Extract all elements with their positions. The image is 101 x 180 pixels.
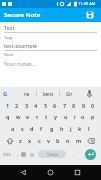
staticText: z <box>19 137 22 144</box>
button[interactable]: s <box>21 125 24 132</box>
staticText: test.example <box>4 42 38 49</box>
button[interactable]: 5 <box>44 102 48 109</box>
button[interactable]: G <box>3 90 11 98</box>
button[interactable]: Secure Note <box>0 8 101 22</box>
staticText: g <box>50 125 54 132</box>
staticText: u <box>64 113 68 120</box>
button[interactable]: o <box>81 113 85 120</box>
button[interactable]: Gir <box>63 87 75 101</box>
button[interactable] <box>74 169 81 176</box>
button[interactable]: bens <box>41 87 55 101</box>
button[interactable]: 7 <box>63 102 67 109</box>
button[interactable]: d <box>30 125 34 132</box>
button[interactable] <box>87 137 95 145</box>
button[interactable] <box>20 151 27 158</box>
staticText: 8 <box>72 102 76 109</box>
button[interactable]: . <box>71 151 77 159</box>
button[interactable]: c <box>38 137 41 144</box>
button[interactable]: m <box>76 137 82 144</box>
staticText: n <box>66 137 70 144</box>
staticText: Türkçe <box>47 152 58 157</box>
button[interactable]: z <box>19 137 22 144</box>
button[interactable]: p <box>91 113 95 120</box>
button[interactable]: ?123 <box>2 150 12 158</box>
button[interactable]: u <box>64 113 68 120</box>
button[interactable] <box>86 11 94 19</box>
button[interactable]: j <box>70 125 72 132</box>
staticText: l <box>88 125 90 132</box>
button[interactable]: x <box>28 137 32 144</box>
staticText: , <box>17 151 19 157</box>
button[interactable] <box>85 149 96 160</box>
staticText: q <box>6 113 10 120</box>
staticText: bens <box>43 91 54 97</box>
button[interactable]: h <box>60 125 64 132</box>
staticText: o <box>81 113 85 120</box>
staticText: k <box>78 125 82 132</box>
button[interactable]: w <box>16 113 21 120</box>
staticText: p <box>91 113 95 120</box>
staticText: h <box>60 125 64 132</box>
button[interactable] <box>20 169 27 176</box>
staticText: c <box>38 137 41 144</box>
staticText: 2 <box>15 102 19 109</box>
staticText: r <box>36 113 39 120</box>
staticText: 6 <box>53 102 57 109</box>
button[interactable]: t <box>45 113 48 120</box>
button[interactable]: ne <box>21 87 33 101</box>
button[interactable]: n <box>66 137 70 144</box>
staticText: Secure Note <box>4 11 41 19</box>
button[interactable]: 8 <box>72 102 76 109</box>
staticText: v <box>47 137 51 144</box>
button[interactable]: k <box>78 125 82 132</box>
staticText: a <box>11 125 15 132</box>
button[interactable] <box>47 169 54 176</box>
button[interactable]: b <box>56 137 60 144</box>
button[interactable]: Your notes... <box>4 60 97 67</box>
button[interactable]: , <box>15 150 20 158</box>
staticText: i <box>74 113 76 120</box>
button[interactable]: 3 <box>25 102 29 109</box>
staticText: ne <box>24 91 30 97</box>
staticText: Tags <box>4 35 13 40</box>
staticText: Your notes... <box>4 60 37 67</box>
button[interactable]: y <box>54 113 58 120</box>
staticText: d <box>30 125 34 132</box>
staticText: Test <box>4 24 15 31</box>
staticText: ?123 <box>3 152 11 157</box>
staticText: G <box>3 90 8 98</box>
staticText: e <box>26 113 30 120</box>
button[interactable]: test.example <box>4 42 97 49</box>
button[interactable]: 0 <box>91 102 95 109</box>
button[interactable]: Türkçe <box>38 150 66 158</box>
button[interactable] <box>6 137 14 145</box>
button[interactable]: 4 <box>34 102 38 109</box>
button[interactable]: f <box>40 125 43 132</box>
button[interactable]: l <box>88 125 90 132</box>
staticText: 4 <box>34 102 38 109</box>
button[interactable]: 1 <box>6 102 10 109</box>
staticText: 11:35 AM <box>78 1 96 6</box>
button[interactable]: a <box>11 125 15 132</box>
button[interactable]: 9 <box>82 102 86 109</box>
staticText: f <box>40 125 43 132</box>
staticText: 0 <box>91 102 95 109</box>
button[interactable]: e <box>26 113 30 120</box>
button[interactable]: 6 <box>53 102 57 109</box>
staticText: 1 <box>6 102 10 109</box>
staticText: 3 <box>25 102 29 109</box>
button[interactable]: 2 <box>15 102 19 109</box>
button[interactable]: q <box>6 113 10 120</box>
staticText: 9 <box>82 102 86 109</box>
button[interactable]: Test <box>4 24 97 31</box>
button[interactable]: g <box>50 125 54 132</box>
staticText: 7 <box>63 102 67 109</box>
staticText: m <box>76 137 82 144</box>
button[interactable]: v <box>47 137 51 144</box>
button[interactable] <box>29 152 35 158</box>
button[interactable]: r <box>36 113 39 120</box>
staticText: w <box>16 113 21 120</box>
button[interactable]: i <box>74 113 76 120</box>
button[interactable] <box>86 90 93 99</box>
staticText: j <box>70 125 72 132</box>
